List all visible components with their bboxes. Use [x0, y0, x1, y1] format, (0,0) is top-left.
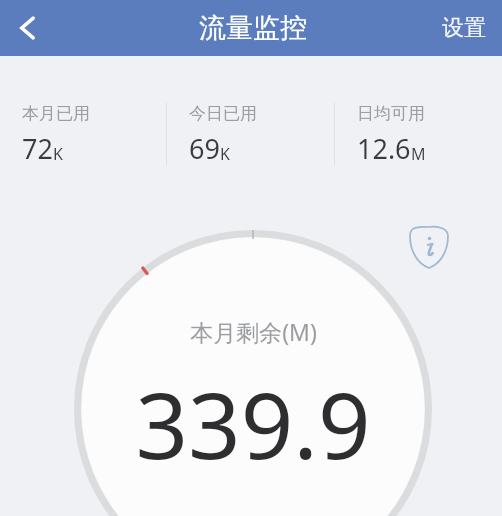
staticText: K: [220, 143, 230, 165]
staticText: 设置: [442, 14, 486, 42]
staticText: 本月剩余(M): [190, 316, 317, 347]
button[interactable]: Back: [0, 0, 56, 56]
staticText: 69: [189, 130, 220, 167]
staticText: 12.6: [357, 130, 411, 167]
button[interactable]: 今日已用: [167, 103, 334, 167]
button[interactable]: 本月剩余(M): [74, 230, 432, 516]
staticText: 339.9: [135, 361, 371, 486]
button[interactable]: 本月已用: [0, 103, 166, 167]
staticText: 本月已用: [22, 103, 90, 124]
staticText: 今日已用: [189, 103, 257, 124]
button[interactable]: 设置: [426, 14, 502, 42]
button[interactable]: 日均可用: [335, 103, 502, 167]
staticText: K: [53, 143, 63, 165]
staticText: M: [411, 143, 426, 165]
staticText: 日均可用: [357, 103, 425, 124]
staticText: 72: [22, 130, 53, 167]
staticText: 流量监控: [199, 11, 307, 45]
button[interactable]: Information: [404, 222, 454, 272]
